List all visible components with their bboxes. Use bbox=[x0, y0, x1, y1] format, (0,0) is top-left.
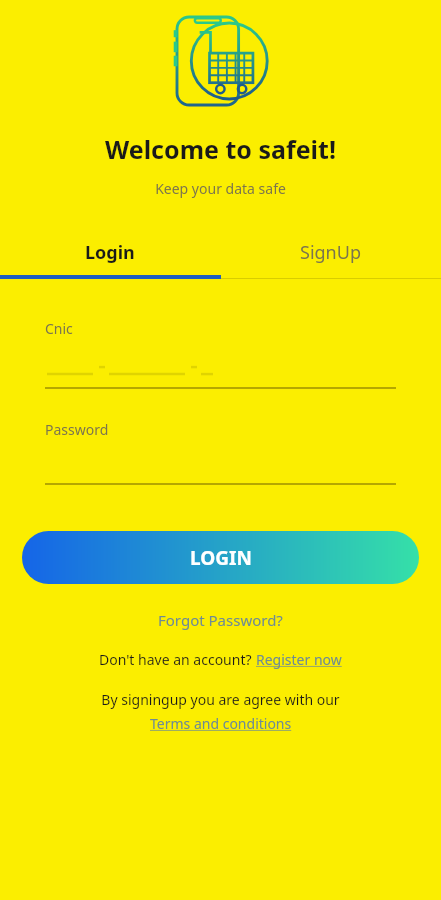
staticText: Forgot Password? bbox=[158, 610, 283, 630]
button[interactable]: Forgot Password? bbox=[150, 608, 291, 632]
staticText: By signingup you are agree with our bbox=[101, 690, 340, 709]
button[interactable]: Register now bbox=[256, 650, 342, 669]
staticText: Password bbox=[45, 420, 109, 439]
button[interactable]: LOGIN bbox=[22, 531, 419, 584]
staticText: SignUp bbox=[300, 240, 361, 265]
staticText: Login bbox=[85, 240, 135, 265]
staticText: Keep your data safe bbox=[155, 179, 286, 198]
staticText: LOGIN bbox=[190, 545, 252, 571]
button[interactable]: Login bbox=[0, 230, 220, 274]
staticText: Welcome to safeit! bbox=[105, 132, 336, 166]
staticText: Don't have an account? bbox=[99, 650, 256, 669]
other: Safeit logo bbox=[166, 14, 276, 114]
staticText: Terms and conditions bbox=[150, 714, 292, 733]
button[interactable]: Terms and conditions bbox=[150, 714, 292, 733]
staticText: Register now bbox=[256, 650, 342, 669]
staticText: Cnic bbox=[45, 319, 73, 338]
button[interactable]: SignUp bbox=[220, 230, 441, 274]
